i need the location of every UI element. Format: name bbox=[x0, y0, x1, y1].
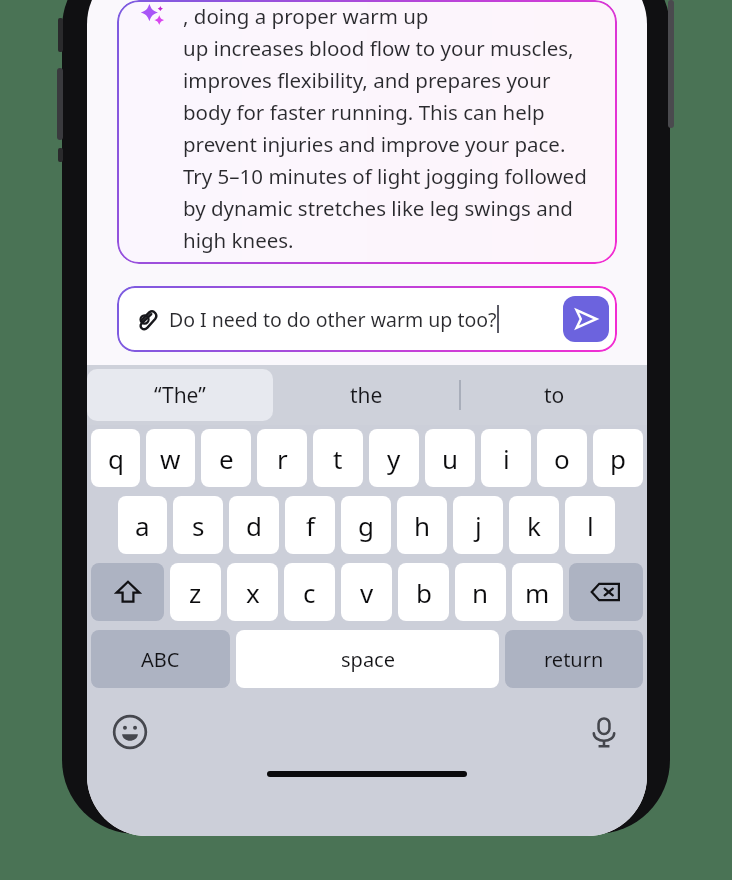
button[interactable]: Backspace bbox=[569, 563, 643, 621]
button[interactable]: a bbox=[118, 496, 167, 554]
staticText: n bbox=[472, 575, 489, 610]
staticText: o bbox=[554, 441, 570, 476]
staticText: space bbox=[341, 646, 395, 673]
staticText: the bbox=[350, 381, 383, 410]
staticText: b bbox=[416, 575, 432, 610]
button[interactable]: z bbox=[170, 563, 221, 621]
button[interactable]: h bbox=[397, 496, 447, 554]
button[interactable]: k bbox=[509, 496, 559, 554]
button[interactable]: Attach file bbox=[117, 286, 617, 352]
button[interactable]: q bbox=[91, 429, 140, 487]
staticText: e bbox=[219, 441, 234, 476]
button[interactable]: m bbox=[512, 563, 563, 621]
staticText: y bbox=[387, 441, 401, 476]
button[interactable]: Dictation bbox=[583, 711, 625, 753]
button[interactable]: the bbox=[273, 365, 459, 425]
button[interactable]: r bbox=[257, 429, 307, 487]
button[interactable]: b bbox=[398, 563, 449, 621]
staticText: t bbox=[333, 441, 343, 476]
button[interactable]: return bbox=[505, 630, 643, 688]
button[interactable]: c bbox=[284, 563, 335, 621]
staticText: c bbox=[303, 575, 316, 610]
staticText: “The” bbox=[154, 381, 206, 410]
staticText: h bbox=[414, 508, 431, 543]
staticText: to bbox=[544, 381, 565, 410]
staticText: d bbox=[246, 508, 262, 543]
button[interactable]: f bbox=[285, 496, 335, 554]
button[interactable]: “The” bbox=[87, 369, 273, 421]
staticText: f bbox=[306, 508, 315, 543]
staticText: l bbox=[587, 508, 594, 543]
staticText: ABC bbox=[141, 646, 180, 673]
staticText: i bbox=[503, 441, 510, 476]
button[interactable]: x bbox=[227, 563, 278, 621]
button[interactable]: s bbox=[173, 496, 223, 554]
button[interactable]: i bbox=[481, 429, 531, 487]
staticText: return bbox=[544, 646, 604, 673]
staticText: q bbox=[108, 441, 124, 476]
button[interactable]: to bbox=[461, 365, 647, 425]
button[interactable]: Attach file bbox=[131, 304, 161, 334]
button[interactable]: t bbox=[313, 429, 363, 487]
button[interactable]: e bbox=[201, 429, 251, 487]
staticText: z bbox=[189, 575, 202, 610]
button[interactable]: n bbox=[455, 563, 506, 621]
staticText: , doing a proper warm up up increases bl… bbox=[183, 2, 599, 254]
staticText: r bbox=[277, 441, 288, 476]
staticText: x bbox=[246, 575, 260, 610]
button[interactable]: j bbox=[453, 496, 503, 554]
button[interactable]: space bbox=[236, 630, 499, 688]
staticText: m bbox=[525, 575, 550, 610]
button[interactable]: w bbox=[146, 429, 195, 487]
button[interactable]: l bbox=[565, 496, 615, 554]
button[interactable]: u bbox=[425, 429, 475, 487]
staticText: v bbox=[360, 575, 374, 610]
button[interactable]: v bbox=[341, 563, 392, 621]
button[interactable]: o bbox=[537, 429, 587, 487]
button[interactable]: p bbox=[593, 429, 643, 487]
staticText: u bbox=[442, 441, 459, 476]
button[interactable]: d bbox=[229, 496, 279, 554]
staticText: a bbox=[135, 508, 150, 543]
button[interactable]: ABC bbox=[91, 630, 230, 688]
staticText: w bbox=[160, 441, 181, 476]
staticText: s bbox=[192, 508, 205, 543]
staticText: j bbox=[475, 508, 482, 543]
staticText: k bbox=[527, 508, 541, 543]
button[interactable]: Send bbox=[563, 296, 609, 342]
button[interactable]: y bbox=[369, 429, 419, 487]
staticText: Do I need to do other warm up too? bbox=[169, 306, 497, 333]
button[interactable]: g bbox=[341, 496, 391, 554]
staticText: p bbox=[610, 441, 626, 476]
staticText: g bbox=[358, 508, 374, 543]
button[interactable]: Shift bbox=[91, 563, 164, 621]
button[interactable]: Emoji bbox=[109, 711, 151, 753]
